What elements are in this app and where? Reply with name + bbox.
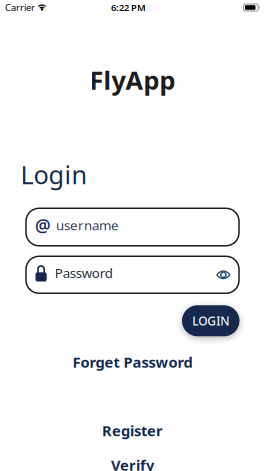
staticText: Login bbox=[20, 158, 87, 191]
button[interactable]: Register bbox=[102, 421, 163, 440]
staticText: Password bbox=[55, 264, 113, 282]
button[interactable]: Show password bbox=[216, 270, 230, 279]
staticText: Carrier bbox=[5, 1, 35, 14]
button[interactable]: LOGIN bbox=[182, 305, 239, 336]
staticText: 6:22 PM bbox=[111, 1, 146, 14]
staticText: FlyApp bbox=[89, 63, 175, 97]
staticText: @ bbox=[35, 214, 51, 237]
button[interactable]: Forget Password bbox=[72, 352, 192, 372]
button[interactable]: Verify bbox=[111, 455, 154, 471]
staticText: Verify bbox=[111, 455, 154, 471]
staticText: username bbox=[56, 216, 119, 234]
staticText: LOGIN bbox=[192, 313, 229, 329]
staticText: Register bbox=[102, 421, 163, 440]
staticText: Forget Password bbox=[72, 352, 192, 372]
